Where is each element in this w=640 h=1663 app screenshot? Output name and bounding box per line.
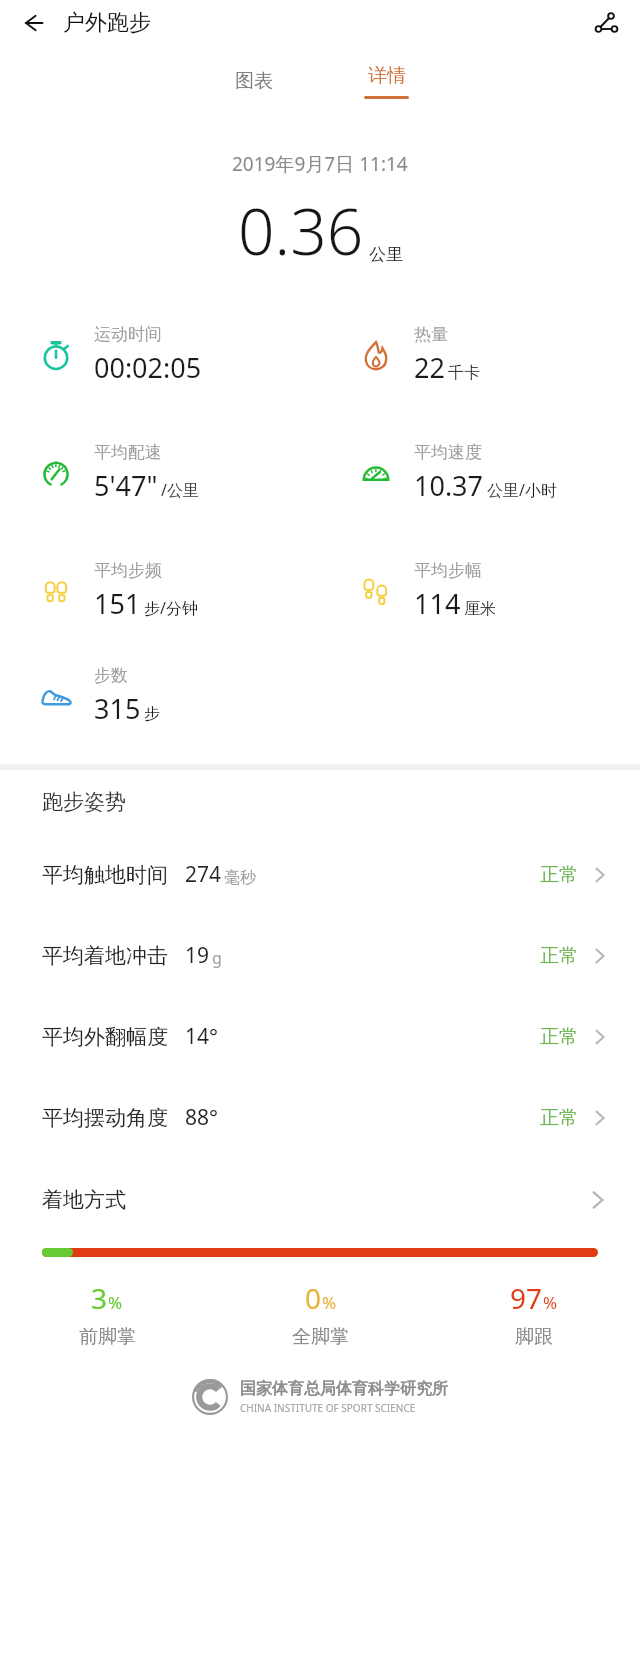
button[interactable]: Back <box>19 9 47 37</box>
staticText: CHINA INSTITUTE OF SPORT SCIENCE <box>240 1401 416 1415</box>
staticText: 运动时间 <box>94 324 162 345</box>
staticText: 平均速度 <box>414 442 482 463</box>
staticText: 国家体育总局体育科学研究所 <box>240 1379 448 1399</box>
staticText: 脚跟 <box>515 1325 553 1349</box>
staticText: /公里 <box>161 479 199 501</box>
staticText: % <box>322 1291 337 1314</box>
staticText: 正常 <box>540 863 578 887</box>
staticText: 公里/小时 <box>487 479 557 501</box>
staticText: 14° <box>185 1022 219 1051</box>
staticText: 公里 <box>369 244 403 265</box>
staticText: 步/分钟 <box>144 597 198 619</box>
button[interactable]: 着地方式 <box>0 1158 640 1242</box>
staticText: 平均配速 <box>94 442 162 463</box>
staticText: 户外跑步 <box>63 9 151 37</box>
staticText: % <box>543 1291 558 1314</box>
staticText: 全脚掌 <box>292 1325 349 1349</box>
staticText: 步 <box>144 704 160 724</box>
staticText: 274 <box>185 860 222 889</box>
staticText: 厘米 <box>464 599 496 619</box>
staticText: 0.36 <box>238 187 364 274</box>
staticText: % <box>108 1291 123 1314</box>
staticText: 19 <box>185 941 210 970</box>
staticText: 图表 <box>235 69 273 93</box>
staticText: 00:02:05 <box>94 349 202 386</box>
staticText: 平均摆动角度 <box>42 1105 168 1131</box>
staticText: 0 <box>305 1279 322 1317</box>
staticText: 跑步姿势 <box>42 789 126 815</box>
staticText: 步数 <box>94 665 128 686</box>
staticText: 315 <box>94 690 141 727</box>
button[interactable]: 平均着地冲击 <box>0 915 640 996</box>
staticText: 平均着地冲击 <box>42 943 168 969</box>
button[interactable]: 平均外翻幅度 <box>0 996 640 1077</box>
staticText: 热量 <box>414 324 448 345</box>
staticText: g <box>212 947 222 969</box>
staticText: 2019年9月7日 11:14 <box>232 151 408 177</box>
staticText: 正常 <box>540 1025 578 1049</box>
staticText: 平均触地时间 <box>42 862 168 888</box>
staticText: 88° <box>185 1103 219 1132</box>
button[interactable]: Share <box>589 7 621 39</box>
staticText: 平均外翻幅度 <box>42 1024 168 1050</box>
staticText: 着地方式 <box>42 1187 126 1213</box>
staticText: 22 <box>414 349 445 386</box>
staticText: 毫秒 <box>224 868 256 888</box>
staticText: 正常 <box>540 1106 578 1130</box>
button[interactable]: 详情 <box>320 45 452 117</box>
staticText: 151 <box>94 585 141 622</box>
staticText: 3 <box>91 1279 108 1317</box>
button[interactable]: 平均摆动角度 <box>0 1077 640 1158</box>
staticText: 平均步幅 <box>414 560 482 581</box>
staticText: 平均步频 <box>94 560 162 581</box>
staticText: 千卡 <box>448 363 480 383</box>
staticText: 正常 <box>540 944 578 968</box>
staticText: 详情 <box>368 64 406 88</box>
button[interactable]: 图表 <box>188 45 320 117</box>
button[interactable]: 平均触地时间 <box>0 834 640 915</box>
staticText: 前脚掌 <box>79 1325 136 1349</box>
staticText: 10.37 <box>414 467 484 504</box>
staticText: 97 <box>510 1279 543 1317</box>
staticText: 114 <box>414 585 461 622</box>
staticText: 5'47" <box>94 467 158 504</box>
